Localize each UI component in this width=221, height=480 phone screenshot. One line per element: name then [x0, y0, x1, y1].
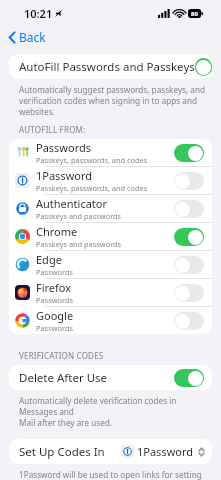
staticText: Passkeys, passwords, and codes	[36, 183, 148, 193]
staticText: Edge	[36, 252, 62, 267]
staticText: Passwords	[36, 295, 73, 305]
button[interactable]: Set Up Codes In	[9, 439, 212, 464]
button[interactable]: Off	[174, 200, 204, 218]
button[interactable]: Off	[174, 256, 204, 274]
staticText: 1Password	[36, 168, 93, 183]
staticText: Automatically delete verification codes …	[19, 395, 207, 428]
staticText: Delete After Use	[19, 370, 108, 386]
staticText: Passwords	[36, 140, 92, 155]
button[interactable]: On	[174, 369, 204, 387]
button[interactable]: Off	[174, 312, 204, 330]
staticText: Chrome	[36, 224, 78, 239]
button[interactable]: On	[174, 144, 204, 162]
button[interactable]: AutoFill Passwords and Passkeys	[9, 54, 212, 79]
staticText: Set Up Codes In	[19, 444, 105, 460]
button[interactable]: 1Password	[9, 167, 212, 194]
staticText: 1Password will be used to open links for…	[19, 469, 207, 480]
staticText: AutoFill Passwords and Passkeys	[19, 59, 195, 75]
staticText: Passkeys and passwords	[36, 239, 122, 249]
button[interactable]: On	[195, 58, 212, 76]
staticText: 10:21	[24, 6, 53, 21]
button[interactable]: Edge	[9, 251, 212, 278]
staticText: Google	[36, 308, 74, 323]
button[interactable]: On	[174, 228, 204, 246]
button[interactable]: Off	[174, 172, 204, 190]
other: Change provider	[198, 446, 205, 458]
staticText: 80	[191, 10, 198, 18]
button[interactable]: Firefox	[9, 279, 212, 306]
button[interactable]: Delete After Use	[9, 365, 212, 390]
staticText: Authenticator	[36, 196, 108, 211]
button[interactable]: Off	[174, 284, 204, 302]
button[interactable]: Authenticator	[9, 195, 212, 222]
staticText: Passwords	[36, 323, 73, 333]
staticText: Firefox	[36, 280, 72, 295]
button[interactable]: Back	[0, 26, 221, 48]
staticText: Passkeys and passwords	[36, 211, 122, 221]
staticText: 1Password	[137, 444, 194, 459]
staticText: Passkeys, passwords, and codes	[36, 155, 148, 165]
button[interactable]: Chrome	[9, 223, 212, 250]
staticText: Automatically suggest passwords, passkey…	[19, 84, 207, 117]
button[interactable]: Google	[9, 307, 212, 334]
staticText: AUTOFILL FROM:	[19, 124, 86, 135]
staticText: VERIFICATION CODES	[19, 350, 104, 361]
staticText: Passwords	[36, 267, 73, 277]
button[interactable]: Passwords	[9, 139, 212, 166]
staticText: Back	[19, 29, 46, 45]
